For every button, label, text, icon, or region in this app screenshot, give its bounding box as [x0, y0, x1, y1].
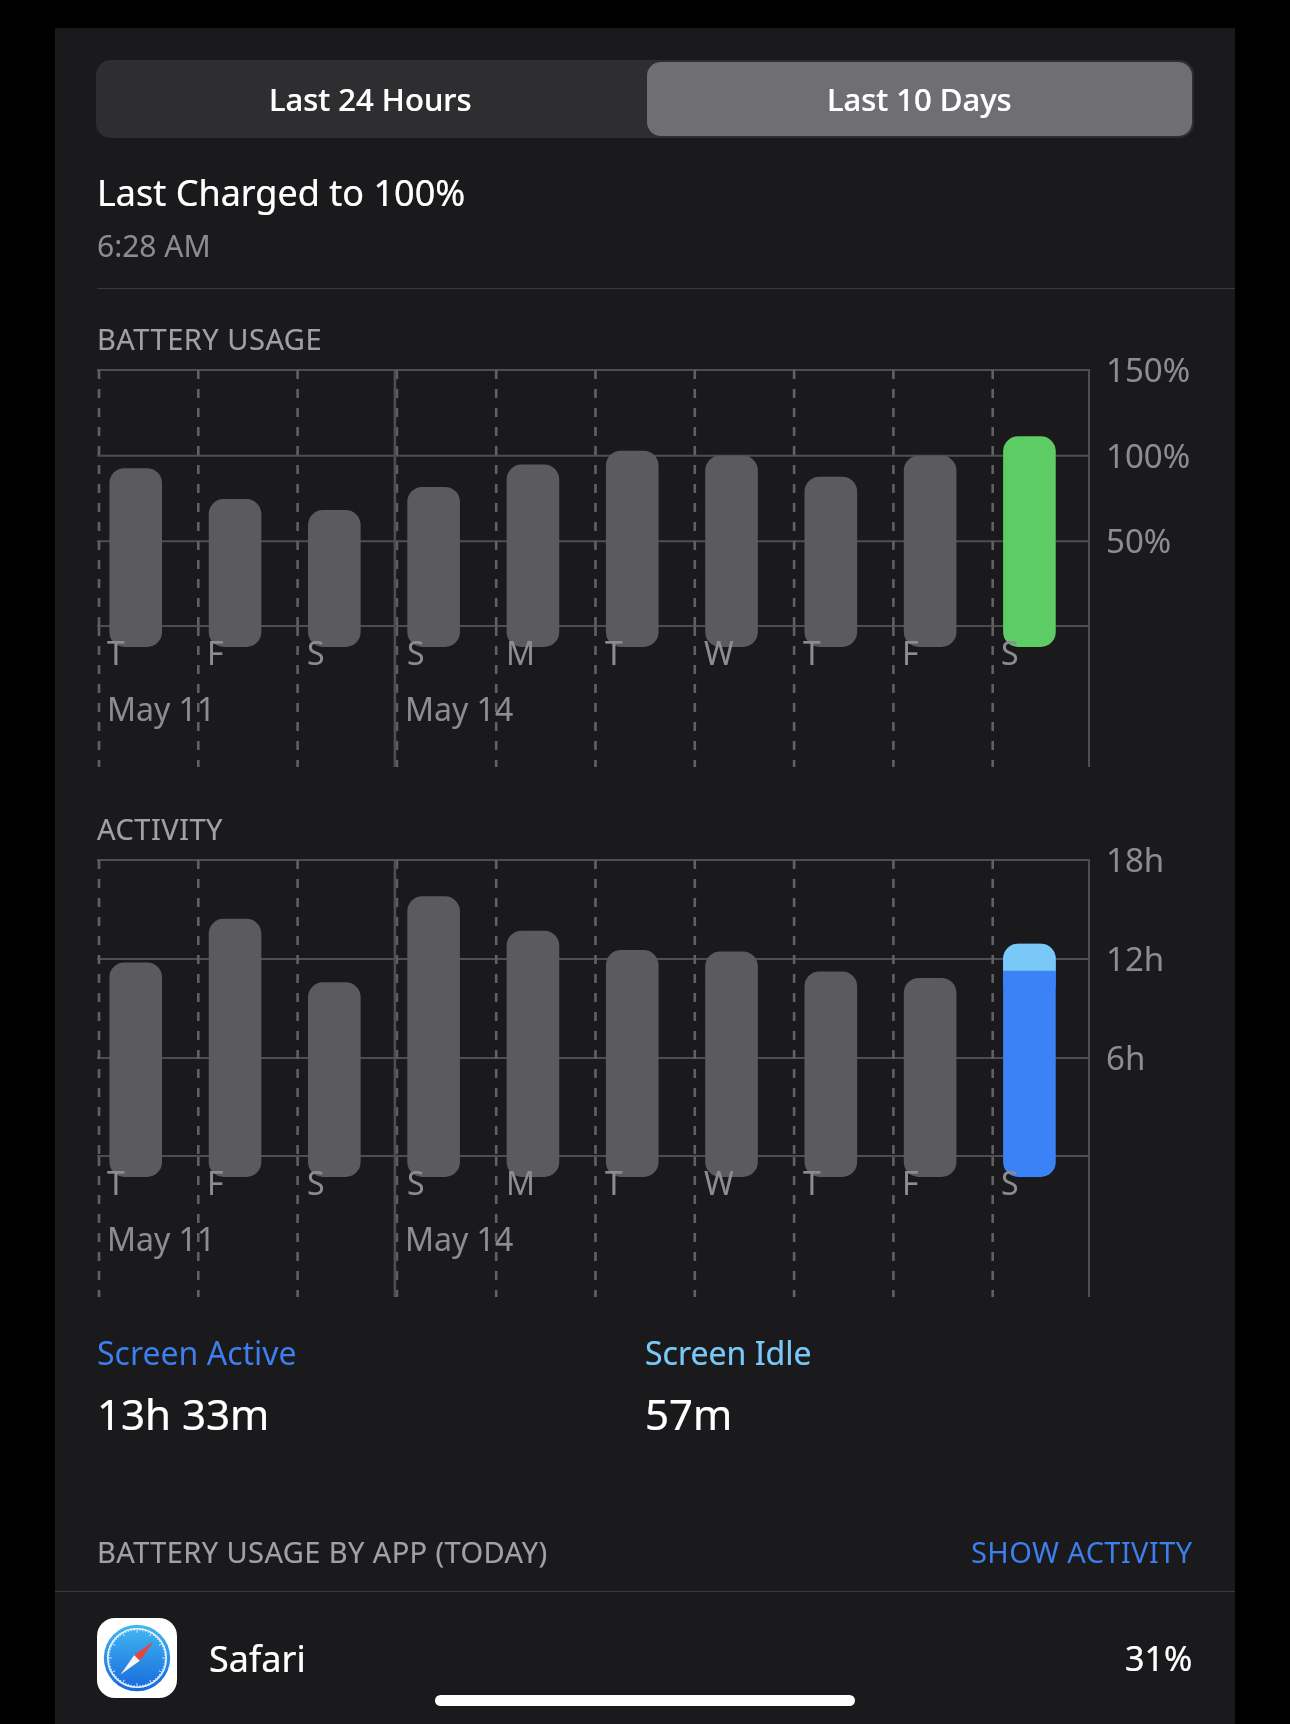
staticText: Screen Idle [645, 1331, 812, 1375]
staticText: Safari [209, 1634, 306, 1683]
staticText: 12h [1106, 936, 1165, 981]
staticText: S [307, 631, 325, 675]
staticText: ACTIVITY [97, 809, 224, 848]
staticText: 50% [1106, 518, 1172, 563]
staticText: May 14 [405, 687, 514, 731]
staticText: T [803, 631, 821, 675]
staticText: F [902, 1161, 919, 1205]
staticText: T [803, 1161, 821, 1205]
button[interactable]: Last 10 Days [647, 62, 1192, 136]
staticText: 57m [645, 1385, 733, 1442]
staticText: 100% [1106, 433, 1191, 478]
button[interactable]: SHOW ACTIVITY [971, 1532, 1193, 1571]
staticText: Last 24 Hours [269, 78, 472, 120]
staticText: T [605, 631, 623, 675]
staticText: S [407, 631, 425, 675]
staticText: T [107, 631, 125, 675]
staticText: T [107, 1161, 125, 1205]
staticText: 6:28 AM [97, 225, 211, 266]
staticText: May 11 [107, 1217, 216, 1261]
staticText: S [1001, 1161, 1019, 1205]
staticText: 150% [1106, 347, 1191, 392]
staticText: 31% [1125, 1635, 1193, 1681]
staticText: S [407, 1161, 425, 1205]
staticText: W [704, 631, 734, 675]
staticText: Screen Active [97, 1331, 297, 1375]
staticText: May 11 [107, 687, 216, 731]
staticText: F [902, 631, 919, 675]
staticText: BATTERY USAGE [97, 319, 323, 358]
button[interactable]: Safari [55, 1592, 1235, 1724]
staticText: 6h [1106, 1035, 1146, 1080]
staticText: W [704, 1161, 734, 1205]
staticText: T [605, 1161, 623, 1205]
other: Safari [97, 1618, 177, 1698]
staticText: Last 10 Days [827, 78, 1012, 120]
staticText: 18h [1106, 837, 1165, 882]
staticText: F [207, 631, 224, 675]
staticText: SHOW ACTIVITY [971, 1532, 1193, 1571]
staticText: S [1001, 631, 1019, 675]
staticText: May 14 [405, 1217, 514, 1261]
staticText: Last Charged to 100% [97, 168, 466, 217]
button[interactable]: Last 24 Hours [96, 60, 645, 138]
staticText: 13h 33m [97, 1385, 270, 1442]
staticText: BATTERY USAGE BY APP (TODAY) [97, 1532, 971, 1571]
staticText: M [506, 631, 536, 675]
staticText: F [207, 1161, 224, 1205]
staticText: S [307, 1161, 325, 1205]
staticText: M [506, 1161, 536, 1205]
